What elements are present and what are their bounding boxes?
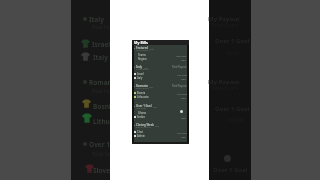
staticText: Italy [181,116,187,119]
staticText: Italy [181,96,187,99]
button[interactable]: Teams [134,53,187,57]
staticText: Bosnia [137,91,146,95]
staticText: 1/2 [150,47,154,50]
staticText: 1/2 [144,66,148,69]
staticText: Live now [176,54,187,57]
staticText: Not now [177,131,187,134]
button[interactable]: Region [134,57,187,61]
staticText: Sloven [93,166,115,175]
button[interactable]: Italy [134,65,187,69]
staticText: Featured [136,46,149,50]
staticText: Ghana [138,111,147,115]
button[interactable]: Serbia [134,115,187,119]
staticText: Italy [181,58,187,61]
staticText: Israel [92,40,111,49]
button[interactable]: Over 1 Goal [134,104,187,108]
staticText: Teams [138,53,146,57]
staticText: Paid Pay [92,88,113,95]
staticText: Not now [177,73,187,76]
staticText: Lithuania [137,95,149,99]
staticText: Over 1 Goal [215,37,250,45]
staticText: Paid Payout [172,84,187,88]
staticText: Italy [137,76,143,80]
button[interactable]: Bosnia [134,91,187,95]
button[interactable]: Chat [134,130,187,134]
staticText: Over 1 Goal [213,166,248,174]
staticText: My Payout [208,78,240,86]
staticText: Over 1 Goal [136,104,152,108]
staticText: Israel [137,72,144,76]
staticText: Single Payout [136,126,151,129]
staticText: 1/2 [149,85,153,88]
staticText: My Bills [134,40,148,45]
staticText: Live odds [136,107,147,110]
button[interactable]: Italy [71,0,110,180]
staticText: Chat [137,130,143,134]
staticText: Paid Pay [92,24,113,31]
staticText: Romani [89,78,114,87]
staticText: Paid Payout [172,65,187,69]
staticText: Over 1 Goal [215,105,250,113]
staticText: Paid Payout [136,87,149,90]
staticText: Admin [137,134,145,138]
staticText: Closing Week [136,123,154,127]
staticText: Serbia [137,115,145,119]
staticText: Romania [136,84,148,88]
staticText: Italy [181,77,187,80]
staticText: Region [138,57,147,61]
staticText: Italy [181,135,187,138]
button[interactable]: Admin [134,134,187,138]
staticText: My Payout [208,15,240,23]
staticText: Total Sc [92,151,111,158]
staticText: 1/2 [153,105,157,108]
button[interactable]: Lithuania [134,95,187,99]
button[interactable]: Featured [134,46,187,50]
button[interactable]: Closing Week [134,123,187,127]
staticText: Not now [177,92,187,95]
button[interactable]: Romania [134,84,187,88]
button[interactable]: Ghana [134,111,187,115]
staticText: Paid Payout [136,68,149,71]
button[interactable]: Israel [134,72,187,76]
staticText: Italy [93,53,108,62]
button[interactable]: Italy [134,76,187,80]
staticText: Italy [136,65,143,69]
staticText: 1/2 [155,124,159,127]
staticText: Lithua [93,117,114,126]
staticText: Italy [89,15,104,24]
staticText: Over 1 [89,140,111,149]
staticText: Bosnia [93,102,115,111]
staticText: Sport events [136,49,150,52]
